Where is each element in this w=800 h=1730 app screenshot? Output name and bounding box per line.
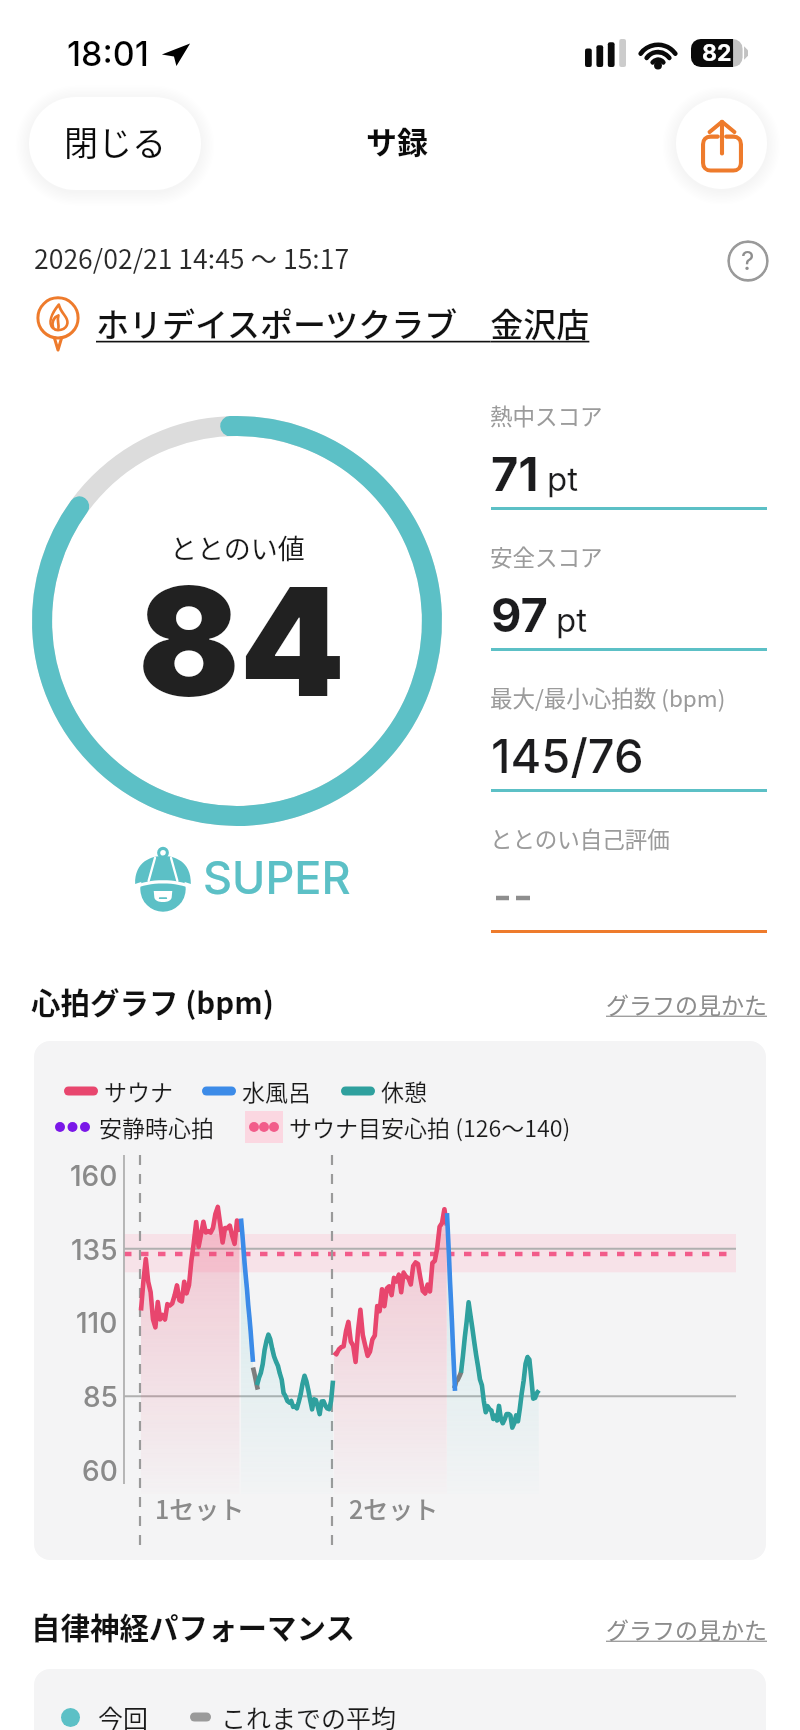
staticText: 145/76 — [491, 727, 644, 784]
staticText: SUPER — [203, 850, 351, 904]
staticText: 97 — [491, 586, 548, 643]
staticText: ととのい値 — [170, 528, 305, 567]
staticText: ホリデイスポーツクラブ 金沢店 — [96, 299, 590, 347]
staticText: 安全スコア — [490, 540, 603, 573]
staticText: 82 — [702, 39, 732, 67]
staticText: グラフの見かた — [606, 1612, 767, 1645]
staticText: 最大/最小心拍数 (bpm) — [490, 681, 726, 714]
staticText: 110 — [76, 1306, 118, 1340]
staticText: 熱中スコア — [490, 399, 603, 432]
staticText: 自律神経パフォーマンス — [31, 1605, 355, 1648]
staticText: 1セット — [155, 1490, 245, 1526]
staticText: 2セット — [349, 1490, 439, 1526]
staticText: 135 — [71, 1233, 118, 1267]
button[interactable]: ホリデイスポーツクラブ 金沢店 — [28, 293, 590, 353]
staticText: pt — [556, 600, 588, 640]
button[interactable]: 閉じる — [29, 97, 201, 190]
staticText: ととのい自己評価 — [490, 822, 670, 855]
staticText: 安静時心拍 — [99, 1110, 214, 1143]
staticText: 160 — [70, 1159, 118, 1193]
staticText: 休憩 — [381, 1074, 427, 1107]
staticText: サウナ目安心拍 (126〜140) — [289, 1110, 571, 1143]
staticText: 水風呂 — [242, 1074, 311, 1107]
button[interactable]: Help — [727, 240, 769, 282]
staticText: 60 — [82, 1454, 118, 1488]
button[interactable]: グラフの見かた — [606, 987, 767, 1020]
button[interactable]: Share — [676, 98, 767, 189]
staticText: 2026/02/21 14:45 ～ 15:17 — [34, 238, 350, 276]
staticText: グラフの見かた — [606, 987, 767, 1020]
staticText: 閉じる — [64, 117, 166, 166]
staticText: これまでの平均 — [221, 1699, 397, 1730]
staticText: 71 — [491, 445, 539, 502]
staticText: 84 — [138, 551, 346, 732]
staticText: サウナ — [104, 1074, 173, 1107]
staticText: 85 — [83, 1380, 118, 1414]
staticText: 心拍グラフ (bpm) — [31, 980, 274, 1023]
staticText: ? — [741, 245, 755, 276]
staticText: サ録 — [366, 118, 428, 163]
staticText: 今回 — [98, 1699, 149, 1730]
button[interactable]: グラフの見かた — [606, 1612, 767, 1645]
staticText: pt — [547, 459, 579, 499]
staticText: 18:01 — [67, 33, 149, 74]
